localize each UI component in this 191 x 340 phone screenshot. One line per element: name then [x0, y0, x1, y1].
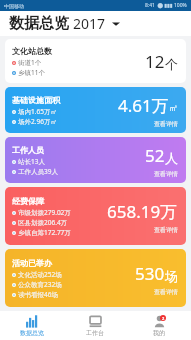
- staticText: 数据总览: [20, 329, 44, 337]
- staticText: 基础设施面积: [12, 95, 60, 105]
- button[interactable]: 工作台: [63, 311, 127, 340]
- button[interactable]: 我的: [127, 311, 191, 340]
- staticText: 12: [145, 50, 165, 73]
- staticText: 乡镇自筹172.77万: [18, 228, 71, 237]
- staticText: 2017: [73, 14, 106, 33]
- button[interactable]: 活动已举办: [5, 249, 186, 307]
- other: 选择年份: [112, 20, 120, 28]
- staticText: 中国移动: [4, 3, 24, 9]
- staticText: 区县划拨206.4万: [18, 218, 68, 227]
- staticText: 查看详情: [154, 170, 178, 178]
- staticText: 经费保障: [12, 196, 44, 206]
- staticText: 场内1.65万㎡: [18, 107, 57, 116]
- button[interactable]: 数据总览: [0, 311, 63, 340]
- staticText: 公众教育232场: [18, 280, 62, 289]
- staticText: 站长13人: [18, 157, 45, 166]
- staticText: 52: [145, 144, 165, 167]
- button[interactable]: 查看详情: [154, 288, 178, 296]
- staticText: 个: [165, 56, 178, 72]
- staticText: 查看详情: [154, 226, 178, 234]
- staticText: 2: [162, 316, 165, 321]
- staticText: 4.61万: [118, 94, 169, 117]
- staticText: 街道1个: [18, 58, 42, 67]
- staticText: 人: [165, 150, 178, 166]
- button[interactable]: 工作人员: [5, 137, 186, 183]
- staticText: 文化站总数: [12, 46, 52, 56]
- button[interactable]: 查看详情: [154, 226, 178, 234]
- staticText: 场外2.96万㎡: [18, 117, 57, 126]
- staticText: 活动已举办: [12, 258, 52, 268]
- button[interactable]: 选择年份: [110, 18, 122, 30]
- staticText: 工作人员: [12, 145, 44, 155]
- staticText: 8:41 ⬤ ▮▮▮ 100%: [145, 2, 187, 9]
- staticText: 文化活动252场: [18, 270, 62, 279]
- staticText: 658.19万: [107, 200, 178, 223]
- staticText: 530: [135, 262, 165, 285]
- staticText: 我的: [153, 329, 165, 337]
- staticText: 工作人员39人: [18, 167, 58, 176]
- button[interactable]: 查看详情: [154, 120, 178, 128]
- staticText: ㎡: [169, 102, 178, 113]
- staticText: 读书看报46场: [18, 290, 58, 299]
- button[interactable]: 基础设施面积: [5, 87, 186, 133]
- staticText: 工作台: [86, 329, 104, 337]
- button[interactable]: 文化站总数: [5, 39, 186, 83]
- staticText: 乡镇11个: [18, 68, 45, 77]
- staticText: 场: [165, 268, 178, 284]
- staticText: 数据总览: [9, 14, 69, 33]
- staticText: 查看详情: [154, 288, 178, 296]
- button[interactable]: 经费保障: [5, 187, 186, 245]
- staticText: 市级划拨279.02万: [18, 208, 71, 217]
- staticText: 查看详情: [154, 120, 178, 128]
- button[interactable]: 查看详情: [154, 170, 178, 178]
